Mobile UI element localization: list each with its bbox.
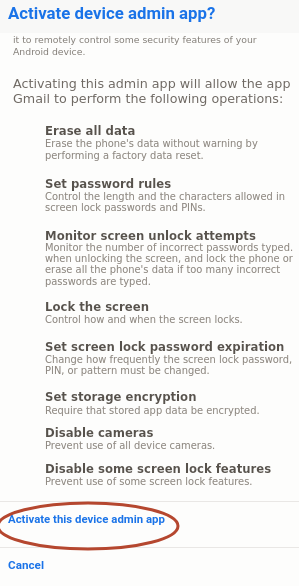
- staticText: Android device.: [13, 46, 86, 57]
- staticText: Control the length and the characters al…: [45, 191, 285, 203]
- staticText: it to remotely control some security fea…: [13, 34, 257, 45]
- staticText: Set password rules: [45, 177, 172, 191]
- staticText: Gmail to perform the following operation…: [13, 91, 284, 106]
- staticText: Erase the phone's data without warning b…: [45, 138, 258, 150]
- staticText: when unlocking the screen, and lock the …: [45, 253, 293, 265]
- staticText: Prevent use of some screen lock features…: [45, 476, 253, 488]
- staticText: Disable some screen lock features: [45, 462, 272, 476]
- staticText: Set screen lock password expiration: [45, 340, 285, 354]
- staticText: Require that stored app data be encrypte…: [45, 405, 260, 417]
- staticText: Prevent use of all device cameras.: [45, 440, 216, 452]
- staticText: screen lock passwords and PINs.: [45, 202, 206, 214]
- staticText: Control how and when the screen locks.: [45, 314, 243, 326]
- staticText: Activating this admin app will allow the…: [13, 76, 291, 91]
- staticText: Erase all data: [45, 124, 136, 138]
- button[interactable]: Activate this device admin app: [0, 502, 299, 546]
- staticText: performing a factory data reset.: [45, 150, 204, 162]
- staticText: Disable cameras: [45, 426, 154, 440]
- staticText: Monitor the number of incorrect password…: [45, 242, 294, 254]
- staticText: passwords are typed.: [45, 276, 151, 288]
- staticText: Lock the screen: [45, 300, 149, 314]
- staticText: Set storage encryption: [45, 390, 197, 404]
- staticText: erase all the phone's data if too many i…: [45, 264, 281, 276]
- staticText: Monitor screen unlock attempts: [45, 229, 256, 243]
- staticText: PIN, or pattern must be changed.: [45, 365, 210, 377]
- staticText: Change how frequently the screen lock pa…: [45, 354, 293, 366]
- staticText: Activate device admin app?: [8, 3, 216, 23]
- button[interactable]: Cancel: [0, 548, 299, 586]
- staticText: Activate this device admin app: [8, 512, 165, 525]
- staticText: Cancel: [8, 558, 44, 572]
